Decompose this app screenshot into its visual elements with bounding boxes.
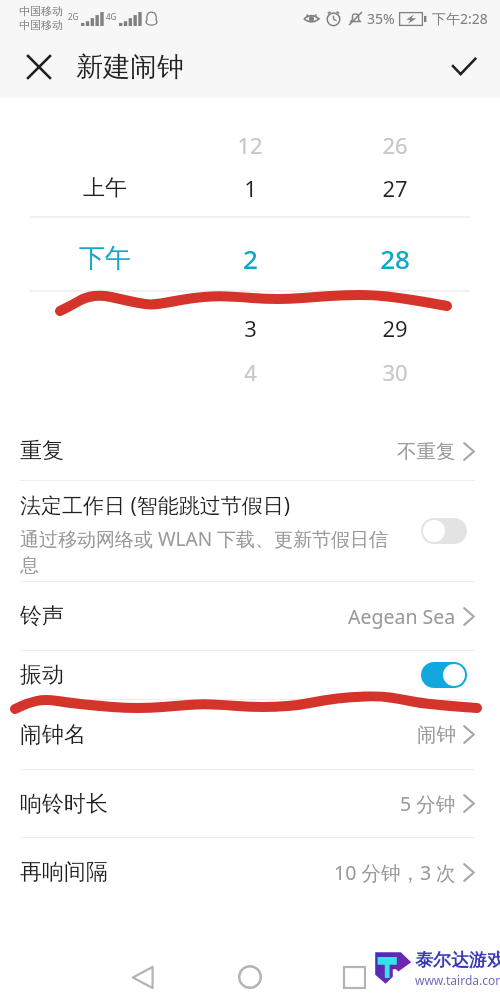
- staticText: 中国移动: [19, 4, 63, 18]
- staticText: 闹钟: [417, 722, 456, 747]
- staticText: www.tairda.com: [415, 972, 500, 985]
- staticText: 10 分钟，3 次: [334, 859, 456, 886]
- staticText: 30: [382, 357, 408, 387]
- staticText: 12: [237, 130, 263, 160]
- staticText: 中国移动: [19, 18, 63, 32]
- staticText: 闹钟名: [20, 721, 86, 749]
- staticText: 26: [382, 130, 408, 160]
- button[interactable]: 振动: [0, 651, 500, 699]
- staticText: 下午: [79, 242, 131, 275]
- button[interactable]: 再响间隔: [0, 838, 500, 906]
- staticText: 5 分钟: [400, 790, 456, 817]
- staticText: 铃声: [20, 602, 64, 630]
- staticText: 新建闹钟: [76, 50, 184, 84]
- staticText: 35%: [367, 9, 395, 28]
- staticText: 法定工作日 (智能跳过节假日): [20, 491, 291, 520]
- button[interactable]: Close: [21, 49, 57, 85]
- staticText: 不重复: [397, 439, 456, 464]
- staticText: 泰尔达游戏网: [415, 949, 500, 972]
- staticText: 29: [382, 313, 408, 343]
- staticText: 再响间隔: [20, 858, 108, 886]
- staticText: 重复: [20, 437, 64, 465]
- staticText: 1: [244, 173, 257, 203]
- button[interactable]: Confirm: [446, 49, 482, 85]
- staticText: 响铃时长: [20, 790, 108, 818]
- staticText: 4: [244, 357, 257, 387]
- button[interactable]: 法定工作日 (智能跳过节假日): [0, 481, 500, 581]
- staticText: 通过移动网络或 WLAN 下载、更新节假日信息: [20, 526, 405, 577]
- button[interactable]: Toggle: [421, 662, 467, 688]
- button[interactable]: Back: [120, 955, 164, 999]
- staticText: Aegean Sea: [348, 603, 456, 630]
- button[interactable]: Recents: [332, 955, 376, 999]
- staticText: 3: [244, 313, 257, 343]
- button[interactable]: 响铃时长: [0, 770, 500, 837]
- button[interactable]: 重复: [0, 422, 500, 480]
- staticText: 下午2:28: [432, 9, 488, 28]
- button[interactable]: Home: [228, 955, 272, 999]
- staticText: 28: [380, 241, 410, 276]
- staticText: 4G: [106, 11, 117, 22]
- staticText: 振动: [20, 661, 64, 689]
- staticText: 2: [243, 241, 258, 276]
- staticText: 上午: [83, 174, 127, 202]
- staticText: 27: [382, 173, 408, 203]
- button[interactable]: Toggle: [421, 518, 467, 544]
- staticText: 2G: [68, 11, 79, 22]
- button[interactable]: 铃声: [0, 582, 500, 650]
- button[interactable]: 闹钟名: [0, 700, 500, 769]
